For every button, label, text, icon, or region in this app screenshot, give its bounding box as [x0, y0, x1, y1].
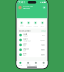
staticText: Gym — [23, 53, 26, 55]
staticText: Top Up — [33, 25, 38, 27]
button[interactable]: Top Up — [32, 21, 39, 27]
staticText: Home — [18, 64, 22, 66]
staticText: Mon — [23, 45, 26, 47]
staticText: Uber — [23, 43, 27, 45]
button[interactable]: Home — [16, 62, 24, 66]
button[interactable]: Send — [18, 21, 25, 27]
staticText: Stats — [34, 64, 37, 66]
staticText: -25.00 — [41, 54, 45, 56]
staticText: +2,400 — [40, 39, 45, 41]
staticText: 9:41 — [18, 0, 25, 4]
button[interactable]: Me — [40, 62, 48, 66]
staticText: Alex Chen — [23, 8, 30, 9]
button[interactable]: Notifications — [43, 6, 46, 9]
button[interactable]: Amazon — [18, 47, 46, 52]
staticText: -9.99 — [42, 34, 45, 36]
button[interactable]: Cards — [24, 62, 32, 66]
staticText: -14.20 — [41, 44, 45, 46]
staticText: Cards — [26, 64, 31, 66]
staticText: Amazon — [23, 48, 29, 50]
staticText: Sun — [23, 50, 26, 52]
staticText: Good morning — [23, 6, 33, 7]
staticText: Spotify — [23, 33, 27, 35]
button[interactable]: Gym — [18, 52, 46, 57]
button[interactable]: Uber — [18, 42, 46, 47]
staticText: -58.00 — [41, 49, 45, 51]
staticText: Recent activity — [19, 30, 31, 32]
staticText: Request — [25, 25, 31, 27]
button[interactable]: More — [39, 21, 46, 27]
button[interactable]: Spotify — [18, 33, 46, 37]
staticText: Salary — [23, 38, 28, 40]
button[interactable]: See all — [41, 30, 45, 32]
staticText: More — [40, 25, 44, 27]
staticText: Me — [43, 64, 45, 66]
staticText: See all — [41, 30, 45, 32]
button[interactable]: Salary — [18, 37, 46, 42]
button[interactable]: Stats — [32, 62, 40, 66]
button[interactable]: Request — [25, 21, 32, 27]
staticText: Yesterday — [23, 40, 31, 42]
